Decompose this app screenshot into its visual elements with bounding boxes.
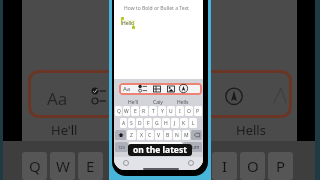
button[interactable]: L [189, 118, 197, 128]
button[interactable]: O [240, 152, 265, 180]
button[interactable]: M [182, 130, 190, 140]
staticText: He'll [128, 99, 139, 106]
staticText: Caiy [153, 99, 163, 106]
button[interactable]: Location [179, 84, 188, 93]
staticText: on the latest [133, 144, 187, 156]
button[interactable]: F [144, 118, 152, 128]
staticText: Y [161, 108, 164, 115]
staticText: Q [29, 156, 41, 176]
staticText: 123 [118, 145, 125, 150]
staticText: T [152, 108, 155, 115]
staticText: S [130, 120, 133, 127]
button[interactable]: Hells [177, 99, 189, 106]
button[interactable]: N [173, 130, 181, 140]
button[interactable]: Checklist [138, 84, 147, 93]
staticText: P [196, 108, 200, 115]
staticText: C [148, 132, 152, 139]
staticText: O [187, 108, 191, 115]
button[interactable]: Caiy [153, 99, 163, 106]
button[interactable]: Q [115, 106, 122, 116]
staticText: W [124, 108, 129, 115]
button[interactable]: Q [22, 152, 47, 180]
button[interactable]: C [146, 130, 154, 140]
button[interactable]: X [137, 130, 145, 140]
button[interactable] [196, 70, 292, 118]
staticText: B [166, 132, 170, 139]
button[interactable]: K [180, 118, 188, 128]
staticText: Hells [177, 99, 189, 106]
button[interactable]: H [162, 118, 170, 128]
staticText: He'll [51, 121, 78, 139]
staticText: How to Bold or Bullet a Text [124, 5, 189, 12]
button[interactable]: on the latest [128, 144, 192, 156]
staticText: J [174, 120, 176, 127]
staticText: E [134, 108, 137, 115]
staticText: W [56, 156, 70, 176]
button[interactable]: W [50, 152, 75, 180]
staticText: L [192, 120, 195, 127]
button[interactable]: P [268, 152, 293, 180]
button[interactable]: I [176, 106, 184, 116]
button[interactable]: S [128, 118, 135, 128]
button[interactable]: He'll [128, 99, 139, 106]
staticText: M [184, 132, 189, 139]
button[interactable]: return [183, 142, 202, 152]
staticText: Hells [236, 121, 266, 139]
button[interactable]: T [149, 106, 157, 116]
button[interactable]: W [123, 106, 130, 116]
button[interactable]: I [212, 152, 237, 180]
staticText: V [157, 132, 161, 139]
staticText: G [155, 120, 159, 127]
button[interactable]: Shift [115, 130, 126, 140]
staticText: Aa [47, 87, 68, 110]
staticText: U [169, 108, 173, 115]
button[interactable] [119, 83, 202, 95]
button[interactable] [28, 70, 148, 118]
button[interactable]: space [129, 142, 182, 152]
button[interactable]: E [78, 152, 103, 180]
staticText: A [122, 120, 126, 127]
staticText: space [149, 144, 162, 150]
staticText: K [182, 120, 186, 127]
staticText: Hello [122, 20, 135, 27]
staticText: O [247, 156, 259, 176]
button[interactable]: A [120, 118, 127, 128]
button[interactable]: Location [225, 87, 243, 105]
button[interactable]: Z [127, 130, 136, 140]
button[interactable]: Checklist [88, 84, 110, 106]
staticText: I [179, 108, 181, 115]
staticText: R [142, 108, 146, 115]
button[interactable]: D [136, 118, 143, 128]
button[interactable]: Y [158, 106, 166, 116]
button[interactable]: O [185, 106, 193, 116]
button[interactable]: V [155, 130, 163, 140]
button[interactable]: J [171, 118, 179, 128]
staticText: H [164, 120, 168, 127]
staticText: return [186, 144, 200, 150]
button[interactable]: B [164, 130, 172, 140]
staticText: N [175, 132, 179, 139]
staticText: E [86, 156, 95, 176]
staticText: X [140, 132, 143, 139]
button[interactable]: Aa [122, 84, 132, 94]
button[interactable]: G [153, 118, 161, 128]
button[interactable]: Photo [167, 85, 175, 93]
button[interactable]: U [167, 106, 175, 116]
button[interactable]: E [131, 106, 139, 116]
staticText: P [276, 156, 286, 176]
staticText: Aa [123, 85, 131, 93]
staticText: F [147, 120, 150, 127]
button[interactable]: Emoji [123, 160, 129, 166]
button[interactable]: Dictate [188, 160, 194, 166]
button[interactable]: Backspace [191, 130, 202, 140]
staticText: Z [130, 132, 133, 139]
button[interactable]: R [140, 106, 148, 116]
staticText: I [222, 156, 228, 176]
staticText: Q [117, 108, 121, 115]
button[interactable]: Table [153, 85, 161, 93]
button[interactable]: Numbers [115, 142, 128, 152]
button[interactable]: P [194, 106, 202, 116]
staticText: D [138, 120, 142, 127]
